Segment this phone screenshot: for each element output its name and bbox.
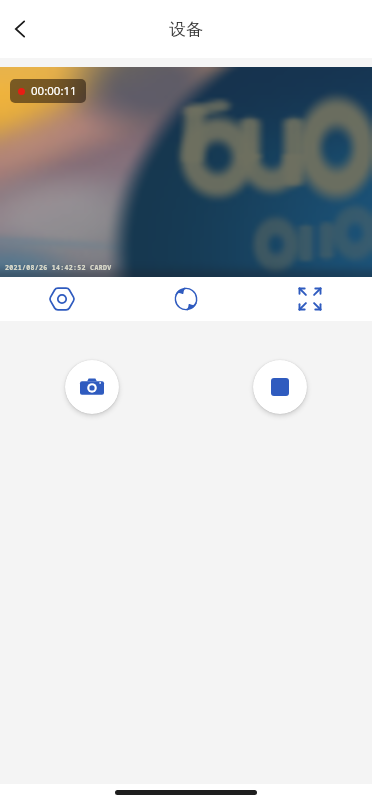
button[interactable]: Fullscreen [248,277,372,321]
staticText: 00:00:11 [31,83,77,99]
button[interactable]: Take photo [65,360,119,414]
button[interactable]: Rotate [124,277,248,321]
staticText: 设备 [169,19,203,40]
button[interactable]: Back [2,11,38,47]
button[interactable]: Stop recording [253,360,307,414]
staticText: 2021/08/26 14:42:52 CARDV [5,263,112,272]
button[interactable]: Settings [0,277,124,321]
